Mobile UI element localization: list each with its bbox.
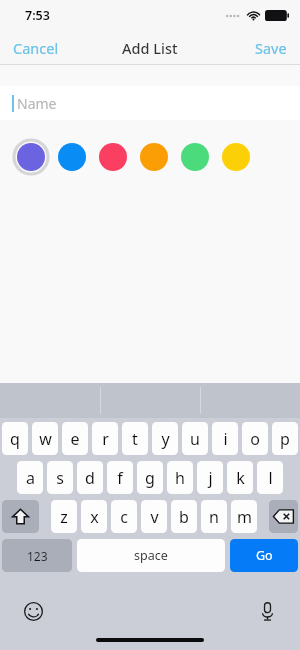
- staticText: Go: [256, 547, 273, 564]
- button[interactable]: t: [122, 422, 148, 455]
- button[interactable]: Name: [0, 86, 300, 120]
- button[interactable]: i: [212, 422, 238, 455]
- staticText: Name: [17, 94, 57, 113]
- button[interactable]: Cancel: [0, 32, 71, 64]
- button[interactable]: space: [77, 539, 225, 572]
- button[interactable]: l: [257, 461, 283, 494]
- staticText: f: [117, 467, 123, 489]
- button[interactable]: g: [137, 461, 163, 494]
- staticText: u: [190, 428, 200, 450]
- staticText: Save: [255, 38, 287, 58]
- button[interactable]: q: [2, 422, 28, 455]
- staticText: v: [150, 506, 159, 528]
- staticText: i: [223, 428, 228, 450]
- button[interactable]: Save: [243, 32, 300, 64]
- staticText: z: [60, 506, 68, 528]
- button[interactable]: n: [201, 500, 227, 533]
- button[interactable]: r: [92, 422, 118, 455]
- staticText: d: [85, 467, 95, 489]
- button[interactable]: v: [141, 500, 167, 533]
- button[interactable]: m: [231, 500, 257, 533]
- staticText: 7:53: [25, 7, 50, 24]
- button[interactable]: Colour 1: [10, 136, 51, 177]
- button[interactable]: Colour 3: [92, 136, 133, 177]
- button[interactable]: Shift: [2, 500, 39, 533]
- button[interactable]: u: [182, 422, 208, 455]
- button[interactable]: z: [51, 500, 77, 533]
- staticText: c: [120, 506, 128, 528]
- button[interactable]: y: [152, 422, 178, 455]
- button[interactable]: Colour 5: [174, 136, 215, 177]
- button[interactable]: a: [17, 461, 43, 494]
- button[interactable]: p: [272, 422, 298, 455]
- button[interactable]: Colour 4: [133, 136, 174, 177]
- button[interactable]: 123: [2, 539, 72, 572]
- staticText: a: [26, 467, 35, 489]
- staticText: y: [161, 428, 170, 450]
- staticText: h: [175, 467, 185, 489]
- staticText: 123: [27, 548, 48, 564]
- button[interactable]: f: [107, 461, 133, 494]
- staticText: Add List: [122, 38, 178, 58]
- staticText: q: [10, 428, 20, 450]
- button[interactable]: s: [47, 461, 73, 494]
- staticText: p: [280, 428, 290, 450]
- button[interactable]: Emoji: [20, 598, 46, 624]
- button[interactable]: j: [197, 461, 223, 494]
- staticText: n: [209, 506, 219, 528]
- staticText: space: [134, 547, 168, 564]
- staticText: Cancel: [13, 38, 59, 58]
- button[interactable]: Colour 6: [215, 136, 256, 177]
- staticText: k: [236, 467, 245, 489]
- staticText: l: [268, 467, 273, 489]
- staticText: w: [39, 428, 52, 450]
- staticText: j: [208, 467, 213, 489]
- button[interactable]: d: [77, 461, 103, 494]
- button[interactable]: Backspace: [269, 500, 298, 533]
- staticText: o: [250, 428, 260, 450]
- button[interactable]: o: [242, 422, 268, 455]
- staticText: s: [56, 467, 64, 489]
- staticText: r: [102, 428, 109, 450]
- staticText: x: [90, 506, 99, 528]
- button[interactable]: k: [227, 461, 253, 494]
- button[interactable]: c: [111, 500, 137, 533]
- staticText: g: [145, 467, 155, 489]
- button[interactable]: h: [167, 461, 193, 494]
- staticText: b: [179, 506, 189, 528]
- button[interactable]: x: [81, 500, 107, 533]
- button[interactable]: w: [32, 422, 58, 455]
- button[interactable]: e: [62, 422, 88, 455]
- button[interactable]: Dictation: [254, 598, 280, 624]
- staticText: m: [237, 506, 252, 528]
- staticText: e: [70, 428, 80, 450]
- button[interactable]: Go: [230, 539, 298, 572]
- button[interactable]: Colour 2: [51, 136, 92, 177]
- staticText: t: [132, 428, 138, 450]
- button[interactable]: b: [171, 500, 197, 533]
